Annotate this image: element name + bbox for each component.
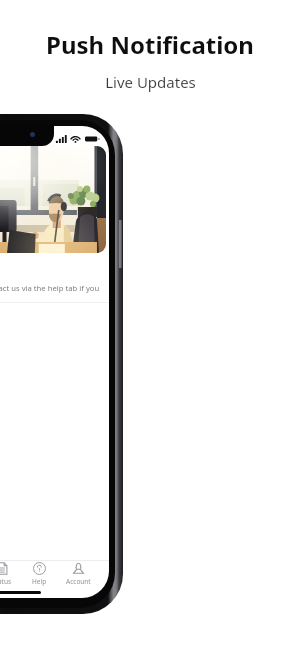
staticText: Push Notification (46, 28, 254, 61)
button[interactable]: Help (30, 561, 49, 587)
button[interactable]: Status (0, 561, 14, 587)
staticText: Live Updates (105, 72, 196, 92)
staticText: Account (66, 577, 91, 586)
staticText: Help (32, 577, 47, 586)
button[interactable]: Account (64, 561, 93, 587)
staticText: Status (0, 577, 12, 586)
staticText: If you have any questions please contact… (0, 283, 109, 293)
